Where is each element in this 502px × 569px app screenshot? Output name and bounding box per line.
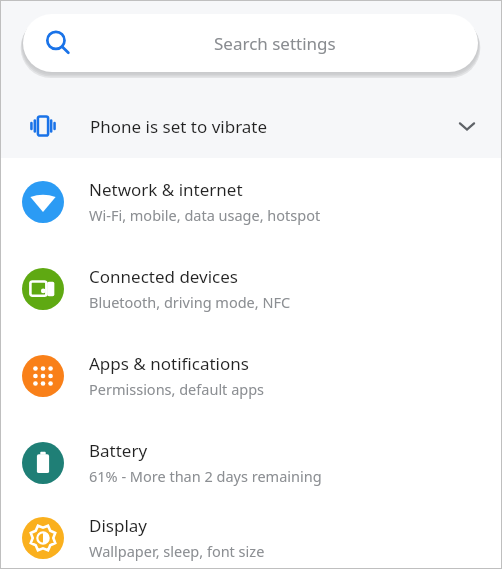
staticText: Wi-Fi, mobile, data usage, hotspot — [89, 205, 321, 225]
other: Expand — [456, 115, 478, 137]
staticText: Phone is set to vibrate — [90, 115, 268, 138]
button[interactable]: Search — [23, 14, 478, 72]
button[interactable]: Network & internet — [0, 158, 502, 245]
other: Search — [45, 30, 71, 56]
staticText: Permissions, default apps — [89, 379, 265, 399]
button[interactable]: Connected devices — [0, 245, 502, 332]
button[interactable]: Battery — [0, 419, 502, 506]
staticText: Battery — [89, 439, 148, 462]
button[interactable]: Apps & notifications — [0, 332, 502, 419]
staticText: Display — [89, 514, 147, 537]
staticText: Search settings — [214, 32, 336, 55]
staticText: Network & internet — [89, 178, 243, 201]
staticText: Wallpaper, sleep, font size — [89, 541, 265, 561]
staticText: Apps & notifications — [89, 352, 249, 375]
staticText: Connected devices — [89, 265, 239, 288]
staticText: Bluetooth, driving mode, NFC — [89, 292, 291, 312]
staticText: 61% - More than 2 days remaining — [89, 466, 322, 486]
button[interactable]: Phone is set to vibrate — [0, 96, 502, 156]
button[interactable]: Display — [0, 506, 502, 569]
